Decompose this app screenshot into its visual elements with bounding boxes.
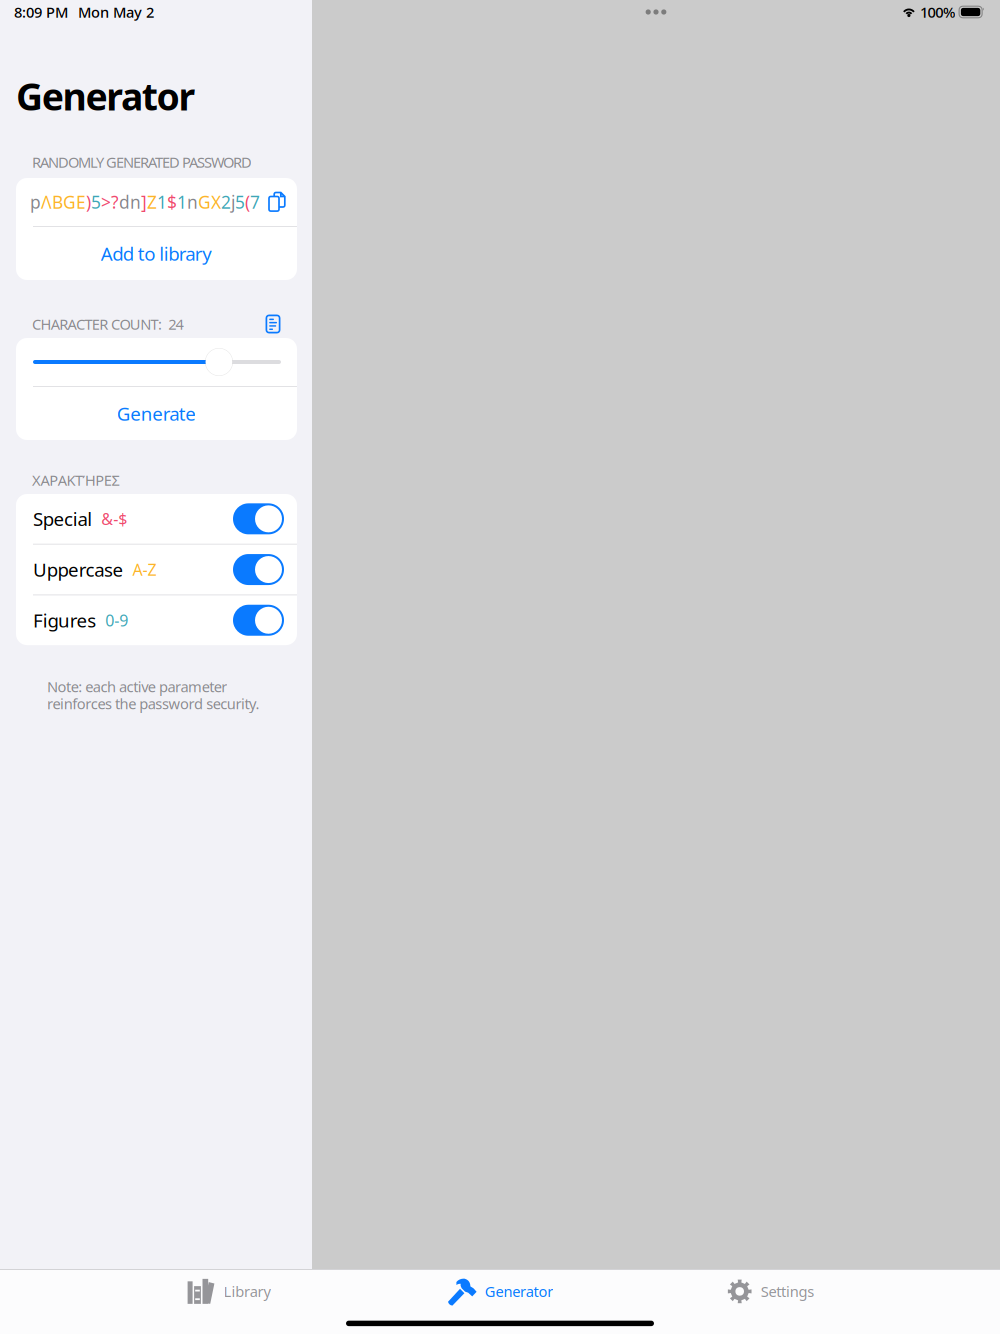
staticText: B	[52, 190, 63, 213]
staticText: G	[63, 190, 76, 213]
staticText: Add to library	[101, 241, 212, 266]
staticText: CHARACTER COUNT: 24	[32, 314, 184, 334]
staticText: Uppercase	[33, 557, 124, 582]
staticText: Note: each active parameter	[47, 677, 227, 696]
button[interactable]: Library	[93, 1271, 364, 1311]
staticText: (	[245, 190, 250, 213]
staticText: A-Z	[133, 559, 157, 580]
staticText: n	[187, 190, 198, 213]
staticText: d	[119, 190, 130, 213]
button[interactable]: Special	[16, 494, 297, 544]
staticText: $	[167, 190, 177, 213]
staticText: j	[231, 190, 235, 213]
staticText: E	[76, 190, 86, 213]
button[interactable]: Generate	[16, 387, 297, 440]
staticText: Generate	[117, 401, 196, 426]
staticText: G	[198, 190, 211, 213]
button[interactable]: Copy password	[268, 191, 286, 212]
staticText: 7	[250, 190, 260, 213]
staticText: 5	[235, 190, 245, 213]
staticText: p	[30, 190, 41, 213]
staticText: ?	[111, 190, 119, 213]
staticText: 8:09 PM	[14, 2, 68, 22]
button[interactable]: Uppercase	[16, 545, 297, 594]
staticText: Z	[147, 190, 157, 213]
staticText: 1	[157, 190, 167, 213]
staticText: Λ	[41, 190, 52, 213]
staticText: Generator	[16, 71, 195, 121]
staticText: ]	[141, 190, 147, 213]
staticText: 5	[91, 190, 101, 213]
staticText: >	[101, 190, 111, 213]
staticText: X	[211, 190, 221, 213]
staticText: Special	[33, 506, 92, 531]
staticText: Generator	[485, 1282, 553, 1301]
staticText: 0-9	[105, 610, 128, 631]
button[interactable]: Multitasking controls	[636, 0, 676, 24]
button[interactable]: Saved presets	[266, 315, 280, 333]
staticText: &-$	[101, 508, 127, 529]
staticText: 1	[177, 190, 187, 213]
staticText: ΧΑΡΑΚΤΉΡΕΣ	[32, 470, 119, 490]
staticText: Mon May 2	[78, 2, 154, 22]
staticText: RANDOMLY GENERATED PASSWORD	[32, 152, 252, 172]
button[interactable]: Settings	[635, 1271, 906, 1311]
staticText: Settings	[761, 1282, 814, 1301]
staticText: 2	[221, 190, 231, 213]
staticText: reinforces the password security.	[47, 694, 260, 713]
staticText: n	[130, 190, 141, 213]
staticText: Library	[224, 1282, 270, 1301]
button[interactable]: Add to library	[16, 227, 297, 280]
button[interactable]: Generator	[364, 1271, 635, 1311]
staticText: 100%	[920, 2, 955, 22]
staticText: Figures	[33, 608, 96, 633]
staticText: )	[86, 190, 91, 213]
button[interactable]: Figures	[16, 595, 297, 645]
